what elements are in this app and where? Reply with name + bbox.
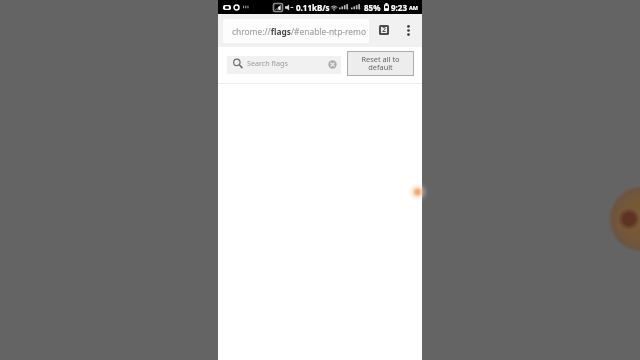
button[interactable]: More options (401, 17, 415, 43)
button[interactable]: Search flags (227, 56, 341, 74)
button[interactable]: Switch tabs (374, 17, 394, 43)
staticText: Reset all to default (360, 54, 401, 73)
button[interactable]: Reset all to default (347, 51, 414, 76)
staticText: 0.11kB/s (296, 2, 330, 13)
staticText: 2 (382, 25, 387, 35)
button[interactable]: Clear search (327, 59, 338, 70)
staticText: chrome://flags/#enable-ntp-remo (232, 26, 366, 37)
staticText: 85% (364, 2, 381, 13)
button[interactable]: chrome://flags/#enable-ntp-remo (223, 19, 369, 43)
staticText: AM (409, 4, 418, 11)
staticText: 9:23 (391, 2, 407, 13)
staticText: Search flags (247, 58, 288, 68)
